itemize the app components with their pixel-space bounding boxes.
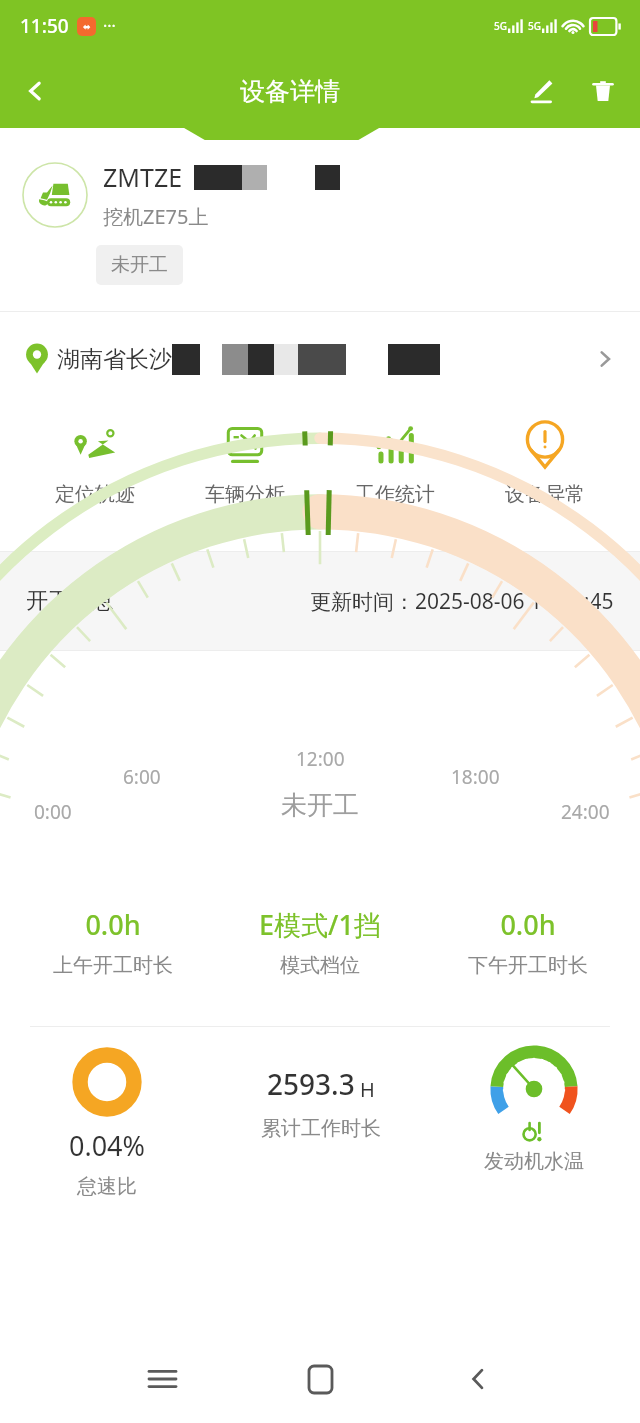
staticText: 上午开工时长	[53, 953, 173, 978]
staticText: ⬌	[83, 22, 91, 32]
staticText: 2593.3	[267, 1065, 355, 1103]
button[interactable]: Back	[0, 58, 70, 124]
staticText: 开工信息	[26, 587, 114, 615]
button[interactable]: Home	[290, 1349, 350, 1409]
staticText: 24:00	[561, 799, 610, 825]
staticText: 5G	[494, 19, 507, 33]
staticText: 更新时间：2025-08-06 11:21:45	[310, 587, 614, 616]
staticText: 0.0h	[500, 906, 556, 943]
staticText: 车辆分析	[205, 482, 285, 507]
staticText: 未开工	[281, 789, 359, 822]
staticText: 0:00	[34, 799, 72, 825]
staticText: 6:00	[123, 764, 161, 790]
staticText: 设备详情	[240, 76, 340, 107]
button[interactable]: Recents	[132, 1349, 192, 1409]
button[interactable]: Delete	[572, 60, 634, 122]
button[interactable]: 设备异常	[490, 418, 600, 507]
staticText: 12:00	[296, 746, 345, 772]
button[interactable]: Back	[448, 1349, 508, 1409]
staticText: 累计工作时长	[261, 1116, 381, 1141]
button[interactable]: 工作统计	[340, 418, 450, 507]
staticText: 11:50	[20, 13, 69, 39]
staticText: 模式档位	[280, 953, 360, 978]
staticText: 设备异常	[505, 482, 585, 507]
button[interactable]: 湖南省长沙	[0, 312, 640, 406]
staticText: 湖南省长沙	[57, 345, 172, 374]
staticText: 0.0h	[85, 906, 141, 943]
staticText: 18:00	[451, 764, 500, 790]
staticText: E模式/1挡	[259, 906, 381, 943]
staticText: 定位轨迹	[55, 482, 135, 507]
button[interactable]: 定位轨迹	[40, 418, 150, 507]
staticText: 5G	[528, 19, 541, 33]
staticText: 发动机水温	[484, 1149, 584, 1174]
button[interactable]: Edit	[510, 60, 572, 122]
button[interactable]: 0.0h	[18, 906, 208, 978]
staticText: 挖机ZE75上	[103, 203, 209, 230]
staticText: 0.04%	[69, 1127, 146, 1164]
staticText: 下午开工时长	[468, 953, 588, 978]
button[interactable]: 未开工	[96, 245, 183, 285]
button[interactable]: E模式/1挡	[225, 906, 415, 978]
staticText: 工作统计	[355, 482, 435, 507]
staticText: ZMTZE	[103, 160, 183, 194]
staticText: ···	[103, 15, 116, 37]
staticText: H	[360, 1076, 375, 1103]
button[interactable]: 0.0h	[433, 906, 623, 978]
staticText: 怠速比	[77, 1174, 137, 1199]
button[interactable]: 车辆分析	[190, 418, 300, 507]
staticText: 未开工	[111, 253, 168, 277]
